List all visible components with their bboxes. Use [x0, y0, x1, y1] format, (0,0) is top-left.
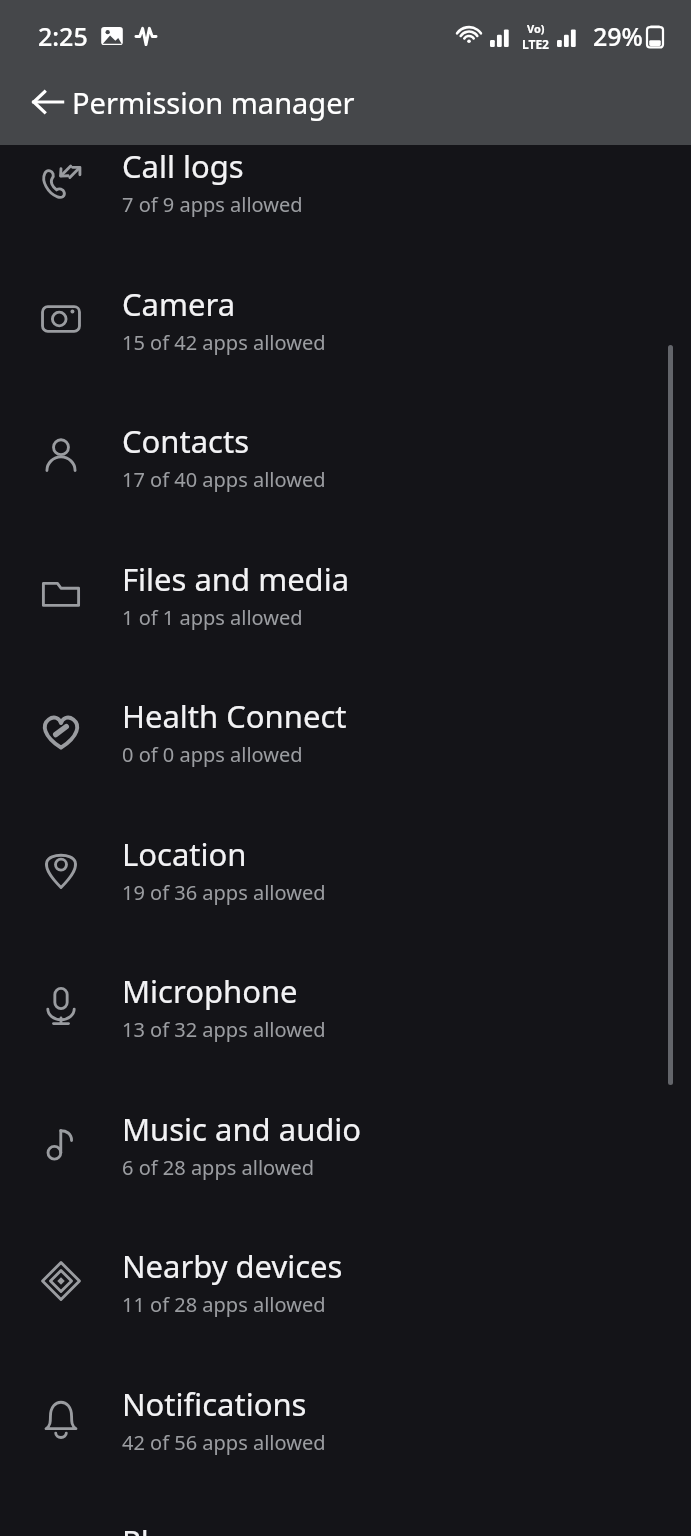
staticText: Microphone: [122, 970, 298, 1012]
staticText: 42 of 56 apps allowed: [122, 1429, 326, 1456]
staticText: Nearby devices: [122, 1245, 343, 1287]
button[interactable]: Phone: [0, 1487, 691, 1536]
button[interactable]: Call logs: [0, 112, 691, 250]
staticText: 17 of 40 apps allowed: [122, 466, 326, 493]
staticText: Health Connect: [122, 695, 347, 737]
button[interactable]: Microphone: [0, 937, 691, 1075]
staticText: Location: [122, 833, 247, 875]
staticText: Phone: [122, 1520, 216, 1536]
button[interactable]: Files and media: [0, 525, 691, 663]
staticText: 7 of 9 apps allowed: [122, 191, 303, 218]
staticText: 2:25: [38, 19, 88, 53]
staticText: 19 of 36 apps allowed: [122, 879, 326, 906]
button[interactable]: Contacts: [0, 387, 691, 525]
staticText: 13 of 32 apps allowed: [122, 1016, 326, 1043]
button[interactable]: Nearby devices: [0, 1212, 691, 1350]
staticText: Permission manager: [72, 83, 355, 122]
staticText: 0 of 0 apps allowed: [122, 741, 303, 768]
staticText: 1 of 1 apps allowed: [122, 604, 303, 631]
button[interactable]: Music and audio: [0, 1075, 691, 1213]
staticText: Vo): [527, 21, 545, 36]
staticText: 15 of 42 apps allowed: [122, 329, 326, 356]
staticText: Notifications: [122, 1383, 307, 1425]
staticText: Call logs: [122, 145, 244, 187]
staticText: 6 of 28 apps allowed: [122, 1154, 315, 1181]
staticText: Camera: [122, 283, 236, 325]
staticText: Contacts: [122, 420, 250, 462]
button[interactable]: Camera: [0, 250, 691, 388]
button[interactable]: Notifications: [0, 1350, 691, 1488]
button[interactable]: Location: [0, 800, 691, 938]
button[interactable]: Back: [18, 72, 78, 132]
staticText: Files and media: [122, 558, 350, 600]
staticText: 29%: [593, 19, 643, 53]
staticText: 11 of 28 apps allowed: [122, 1291, 326, 1318]
staticText: LTE2: [522, 36, 549, 52]
staticText: Music and audio: [122, 1108, 362, 1150]
button[interactable]: Health Connect: [0, 662, 691, 800]
